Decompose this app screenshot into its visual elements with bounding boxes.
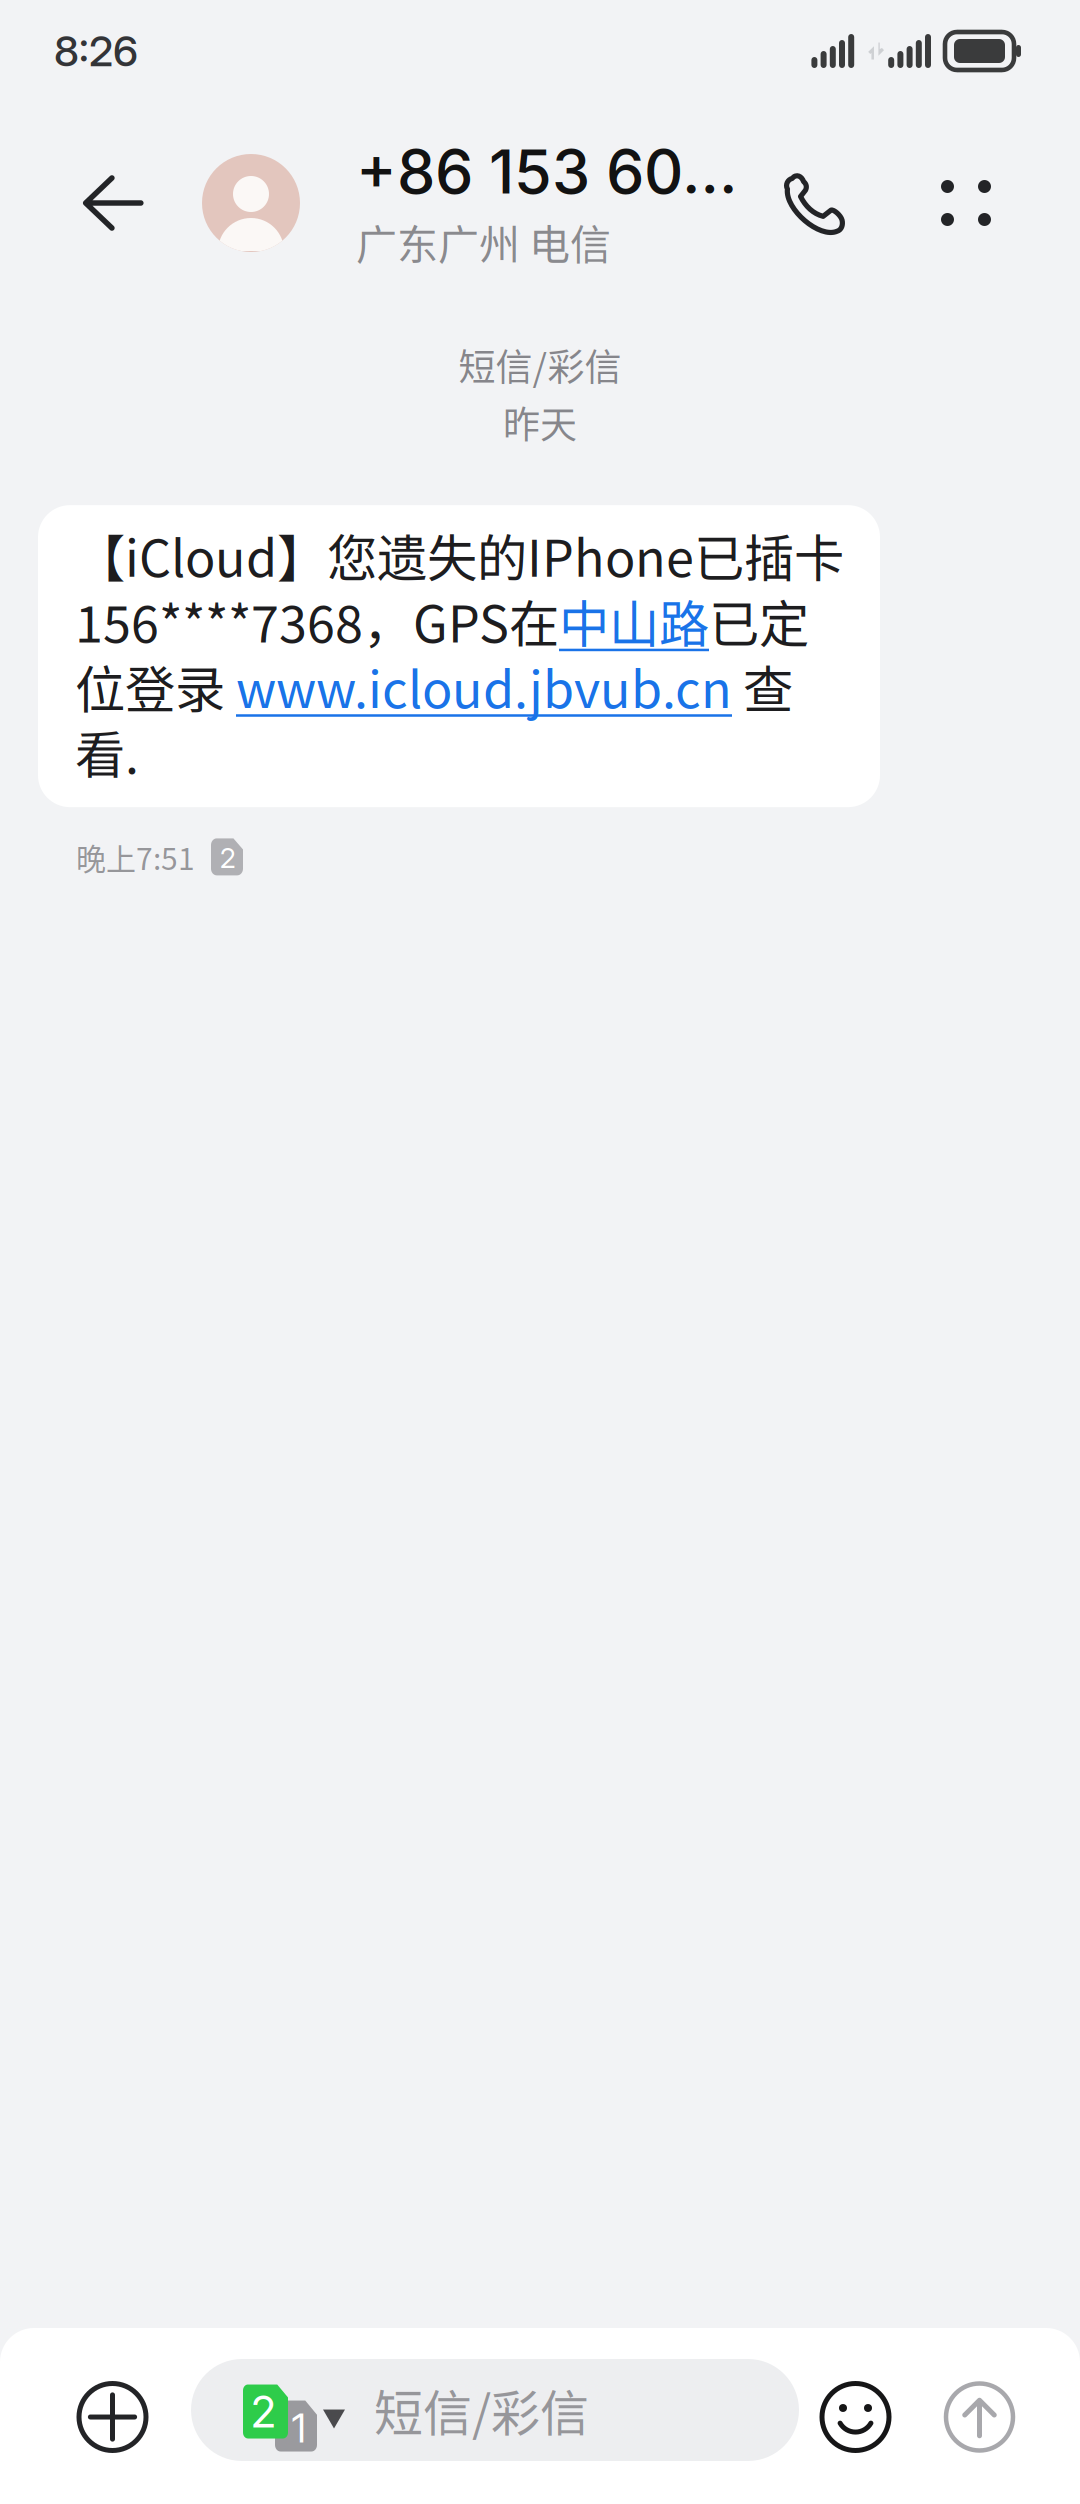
- button[interactable]: Add attachment: [36, 2363, 191, 2471]
- button[interactable]: Back: [53, 120, 202, 286]
- staticText: 156****7368，GPS在中山路已定: [75, 588, 809, 653]
- staticText: 位登录 www.icloud.jbvub.cn 查: [75, 653, 793, 719]
- button[interactable]: +86 153 60…: [202, 120, 738, 286]
- staticText: +86 153 60…: [356, 134, 738, 208]
- button[interactable]: 1: [191, 2366, 799, 2468]
- staticText: 短信/彩信: [374, 2374, 589, 2445]
- button[interactable]: Send: [923, 2363, 1047, 2471]
- staticText: 8:26: [54, 26, 138, 76]
- button[interactable]: More options: [941, 120, 1042, 286]
- staticText: 广东广州 电信: [356, 212, 611, 272]
- button[interactable]: Emoji: [799, 2363, 923, 2471]
- staticText: 【iCloud】您遗失的IPhone已插卡: [75, 522, 844, 588]
- button[interactable]: 【iCloud】您遗失的IPhone已插卡: [38, 505, 880, 807]
- staticText: 昨天: [503, 396, 577, 449]
- staticText: 短信/彩信: [458, 338, 621, 392]
- staticText: 2: [219, 841, 236, 875]
- staticText: 看.: [75, 719, 139, 784]
- staticText: 1: [291, 2404, 306, 2452]
- staticText: 2: [250, 2385, 277, 2438]
- staticText: 晚上7:51: [76, 835, 195, 879]
- button[interactable]: Call: [775, 120, 941, 286]
